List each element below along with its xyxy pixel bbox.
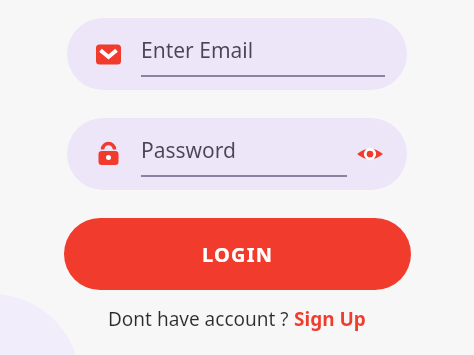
staticText: LOGIN (202, 241, 274, 268)
staticText: Sign Up (294, 306, 366, 332)
staticText: Password (141, 136, 236, 165)
button[interactable]: Dont have account ? (108, 306, 366, 332)
button[interactable]: LOGIN (64, 218, 411, 290)
other: Email (95, 41, 121, 67)
other: Password (95, 141, 121, 167)
button[interactable]: Show password (355, 139, 385, 169)
button[interactable]: Password (67, 118, 407, 190)
button[interactable]: Email (67, 18, 407, 90)
staticText: Dont have account ? (108, 306, 294, 332)
staticText: Enter Email (141, 36, 254, 65)
